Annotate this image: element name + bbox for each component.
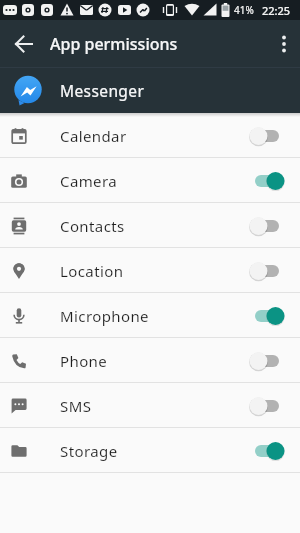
staticText: Messenger	[60, 80, 145, 101]
staticText: 41%	[234, 3, 254, 17]
staticText: 22:25	[262, 3, 291, 18]
button[interactable]: Storage	[0, 428, 300, 473]
button[interactable]: Phone	[0, 338, 300, 383]
staticText: Location	[60, 261, 124, 281]
staticText: Camera	[60, 171, 118, 191]
button[interactable]: Messenger	[0, 67, 300, 113]
staticText: App permissions	[50, 33, 178, 55]
staticText: Calendar	[60, 126, 127, 146]
staticText: Microphone	[60, 306, 149, 326]
staticText: SMS	[60, 396, 92, 416]
staticText: Storage	[60, 441, 118, 461]
staticText: Contacts	[60, 216, 125, 236]
button[interactable]	[8, 28, 40, 60]
button[interactable]: Contacts	[0, 203, 300, 248]
button[interactable]: Microphone	[0, 293, 300, 338]
button[interactable]	[268, 28, 300, 60]
button[interactable]: SMS	[0, 383, 300, 428]
button[interactable]: Calendar	[0, 113, 300, 158]
button[interactable]: Camera	[0, 158, 300, 203]
button[interactable]: Location	[0, 248, 300, 293]
staticText: Phone	[60, 351, 108, 371]
